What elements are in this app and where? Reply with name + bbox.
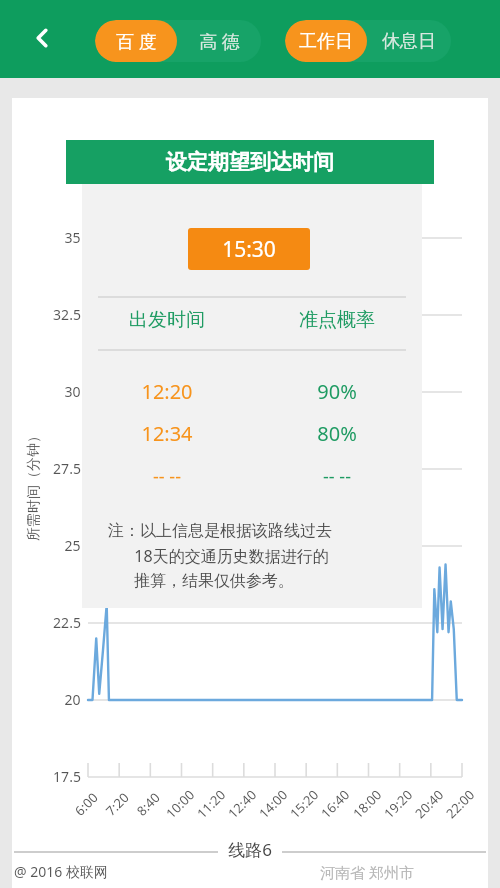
staticText: 出发时间 xyxy=(129,308,205,332)
button[interactable]: Back xyxy=(18,14,66,62)
staticText: 准点概率 xyxy=(299,308,375,332)
button[interactable]: 高 德 xyxy=(177,20,261,62)
staticText: 22:00 xyxy=(442,786,478,822)
staticText: 6:00 xyxy=(70,788,101,819)
staticText: 18:00 xyxy=(349,786,385,822)
staticText: 10:00 xyxy=(162,786,198,822)
staticText: 工作日 xyxy=(299,30,353,53)
staticText: -- -- xyxy=(153,464,181,489)
staticText: 11:20 xyxy=(193,786,229,822)
staticText: 25 xyxy=(64,536,81,555)
staticText: 14:00 xyxy=(255,786,291,822)
button[interactable]: 工作日 xyxy=(285,20,367,62)
staticText: 7:20 xyxy=(101,788,132,819)
button[interactable]: 15:30 xyxy=(188,228,310,270)
staticText: 高 德 xyxy=(199,29,240,54)
staticText: 16:40 xyxy=(317,786,353,822)
staticText: 12:40 xyxy=(224,786,260,822)
staticText: 休息日 xyxy=(382,30,436,53)
staticText: 注：以上信息是根据该路线过去 xyxy=(108,521,332,541)
staticText: 河南省 郑州市 xyxy=(320,862,414,882)
staticText: 20 xyxy=(64,690,81,709)
staticText: 15:20 xyxy=(286,786,322,822)
staticText: 80% xyxy=(317,420,357,447)
staticText: 8:40 xyxy=(132,788,163,819)
staticText: 90% xyxy=(317,378,357,405)
staticText: 30 xyxy=(64,382,81,401)
staticText: 线路6 xyxy=(228,838,272,861)
staticText: 27.5 xyxy=(53,459,81,478)
staticText: 32.5 xyxy=(53,305,81,324)
staticText: 35 xyxy=(64,228,81,247)
staticText: 设定期望到达时间 xyxy=(166,149,334,175)
staticText: 15:30 xyxy=(222,235,276,264)
staticText: @ 2016 校联网 xyxy=(14,862,108,881)
staticText: 19:20 xyxy=(380,786,416,822)
staticText: 20:40 xyxy=(411,786,447,822)
button[interactable]: 休息日 xyxy=(367,20,451,62)
staticText: 百 度 xyxy=(116,29,157,54)
staticText: 18天的交通历史数据进行的 xyxy=(134,545,329,567)
staticText: 12:34 xyxy=(141,420,193,447)
staticText: 22.5 xyxy=(53,613,81,632)
staticText: -- -- xyxy=(323,464,351,489)
staticText: 所需时间（分钟） xyxy=(25,429,43,541)
staticText: 推算，结果仅供参考。 xyxy=(134,571,294,591)
button[interactable]: 百 度 xyxy=(95,20,177,62)
staticText: 17.5 xyxy=(53,767,81,786)
staticText: 12:20 xyxy=(141,378,193,405)
